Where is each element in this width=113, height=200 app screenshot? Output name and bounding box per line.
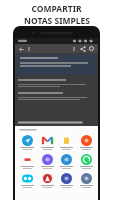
button[interactable]: Undo [25, 45, 33, 53]
staticText: COMPARTIR [31, 3, 82, 15]
button[interactable]: Share [78, 44, 87, 53]
staticText: NOTAS SIMPLES [24, 15, 90, 27]
button[interactable]: Share target [38, 153, 56, 170]
button[interactable]: Back [17, 45, 25, 53]
button[interactable]: Save [87, 44, 96, 53]
button[interactable]: Share target [38, 134, 56, 151]
button[interactable]: Share target [18, 172, 36, 189]
button[interactable]: Share target [77, 134, 95, 151]
button[interactable]: Share target [38, 172, 56, 189]
button[interactable] [20, 57, 93, 73]
button[interactable]: Share target [57, 153, 75, 170]
button[interactable]: Share target [18, 134, 36, 151]
button[interactable]: Share target [77, 172, 95, 189]
button[interactable]: More options [70, 45, 78, 53]
button[interactable]: Share target [18, 153, 36, 170]
button[interactable]: Share target [77, 153, 95, 170]
button[interactable]: Share target [57, 134, 75, 151]
button[interactable]: Share target [57, 172, 75, 189]
